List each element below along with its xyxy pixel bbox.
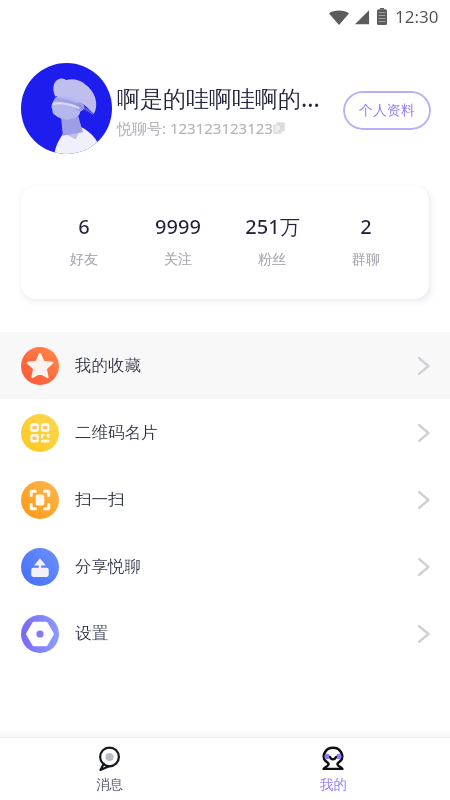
button[interactable]: 扫一扫 — [0, 466, 450, 533]
staticText: 扫一扫 — [75, 489, 125, 510]
staticText: 我的 — [320, 776, 347, 793]
button[interactable]: 2 — [319, 186, 413, 269]
staticText: 我的收藏 — [75, 355, 141, 376]
staticText: 9999 — [155, 213, 201, 240]
staticText: 啊是的哇啊哇啊的... — [117, 82, 320, 113]
staticText: 个人资料 — [359, 102, 415, 120]
button[interactable]: 复制 — [271, 120, 287, 136]
staticText: 群聊 — [352, 251, 380, 269]
button[interactable]: 二维码名片 — [0, 399, 450, 466]
button[interactable]: 我的收藏 — [0, 332, 450, 399]
staticText: 251万 — [245, 213, 300, 240]
staticText: 消息 — [96, 776, 123, 793]
button[interactable]: 消息 — [59, 738, 159, 800]
staticText: 关注 — [164, 251, 192, 269]
staticText: 二维码名片 — [75, 422, 158, 443]
staticText: 悦聊号: 123123123123 — [117, 118, 273, 138]
staticText: 好友 — [70, 251, 98, 269]
button[interactable]: 6 — [37, 186, 131, 269]
staticText: 2 — [360, 213, 372, 240]
staticText: 粉丝 — [258, 251, 286, 269]
button[interactable]: 9999 — [131, 186, 225, 269]
button[interactable]: 设置 — [0, 600, 450, 667]
staticText: 分享悦聊 — [75, 556, 141, 577]
button[interactable]: 个人资料 — [343, 91, 431, 130]
button[interactable]: 头像 — [21, 63, 112, 154]
button[interactable]: 分享悦聊 — [0, 533, 450, 600]
staticText: 12:30 — [395, 5, 439, 28]
staticText: 6 — [78, 213, 90, 240]
button[interactable]: 我的 — [283, 738, 383, 800]
button[interactable]: 251万 — [225, 186, 319, 269]
staticText: 设置 — [75, 623, 108, 644]
